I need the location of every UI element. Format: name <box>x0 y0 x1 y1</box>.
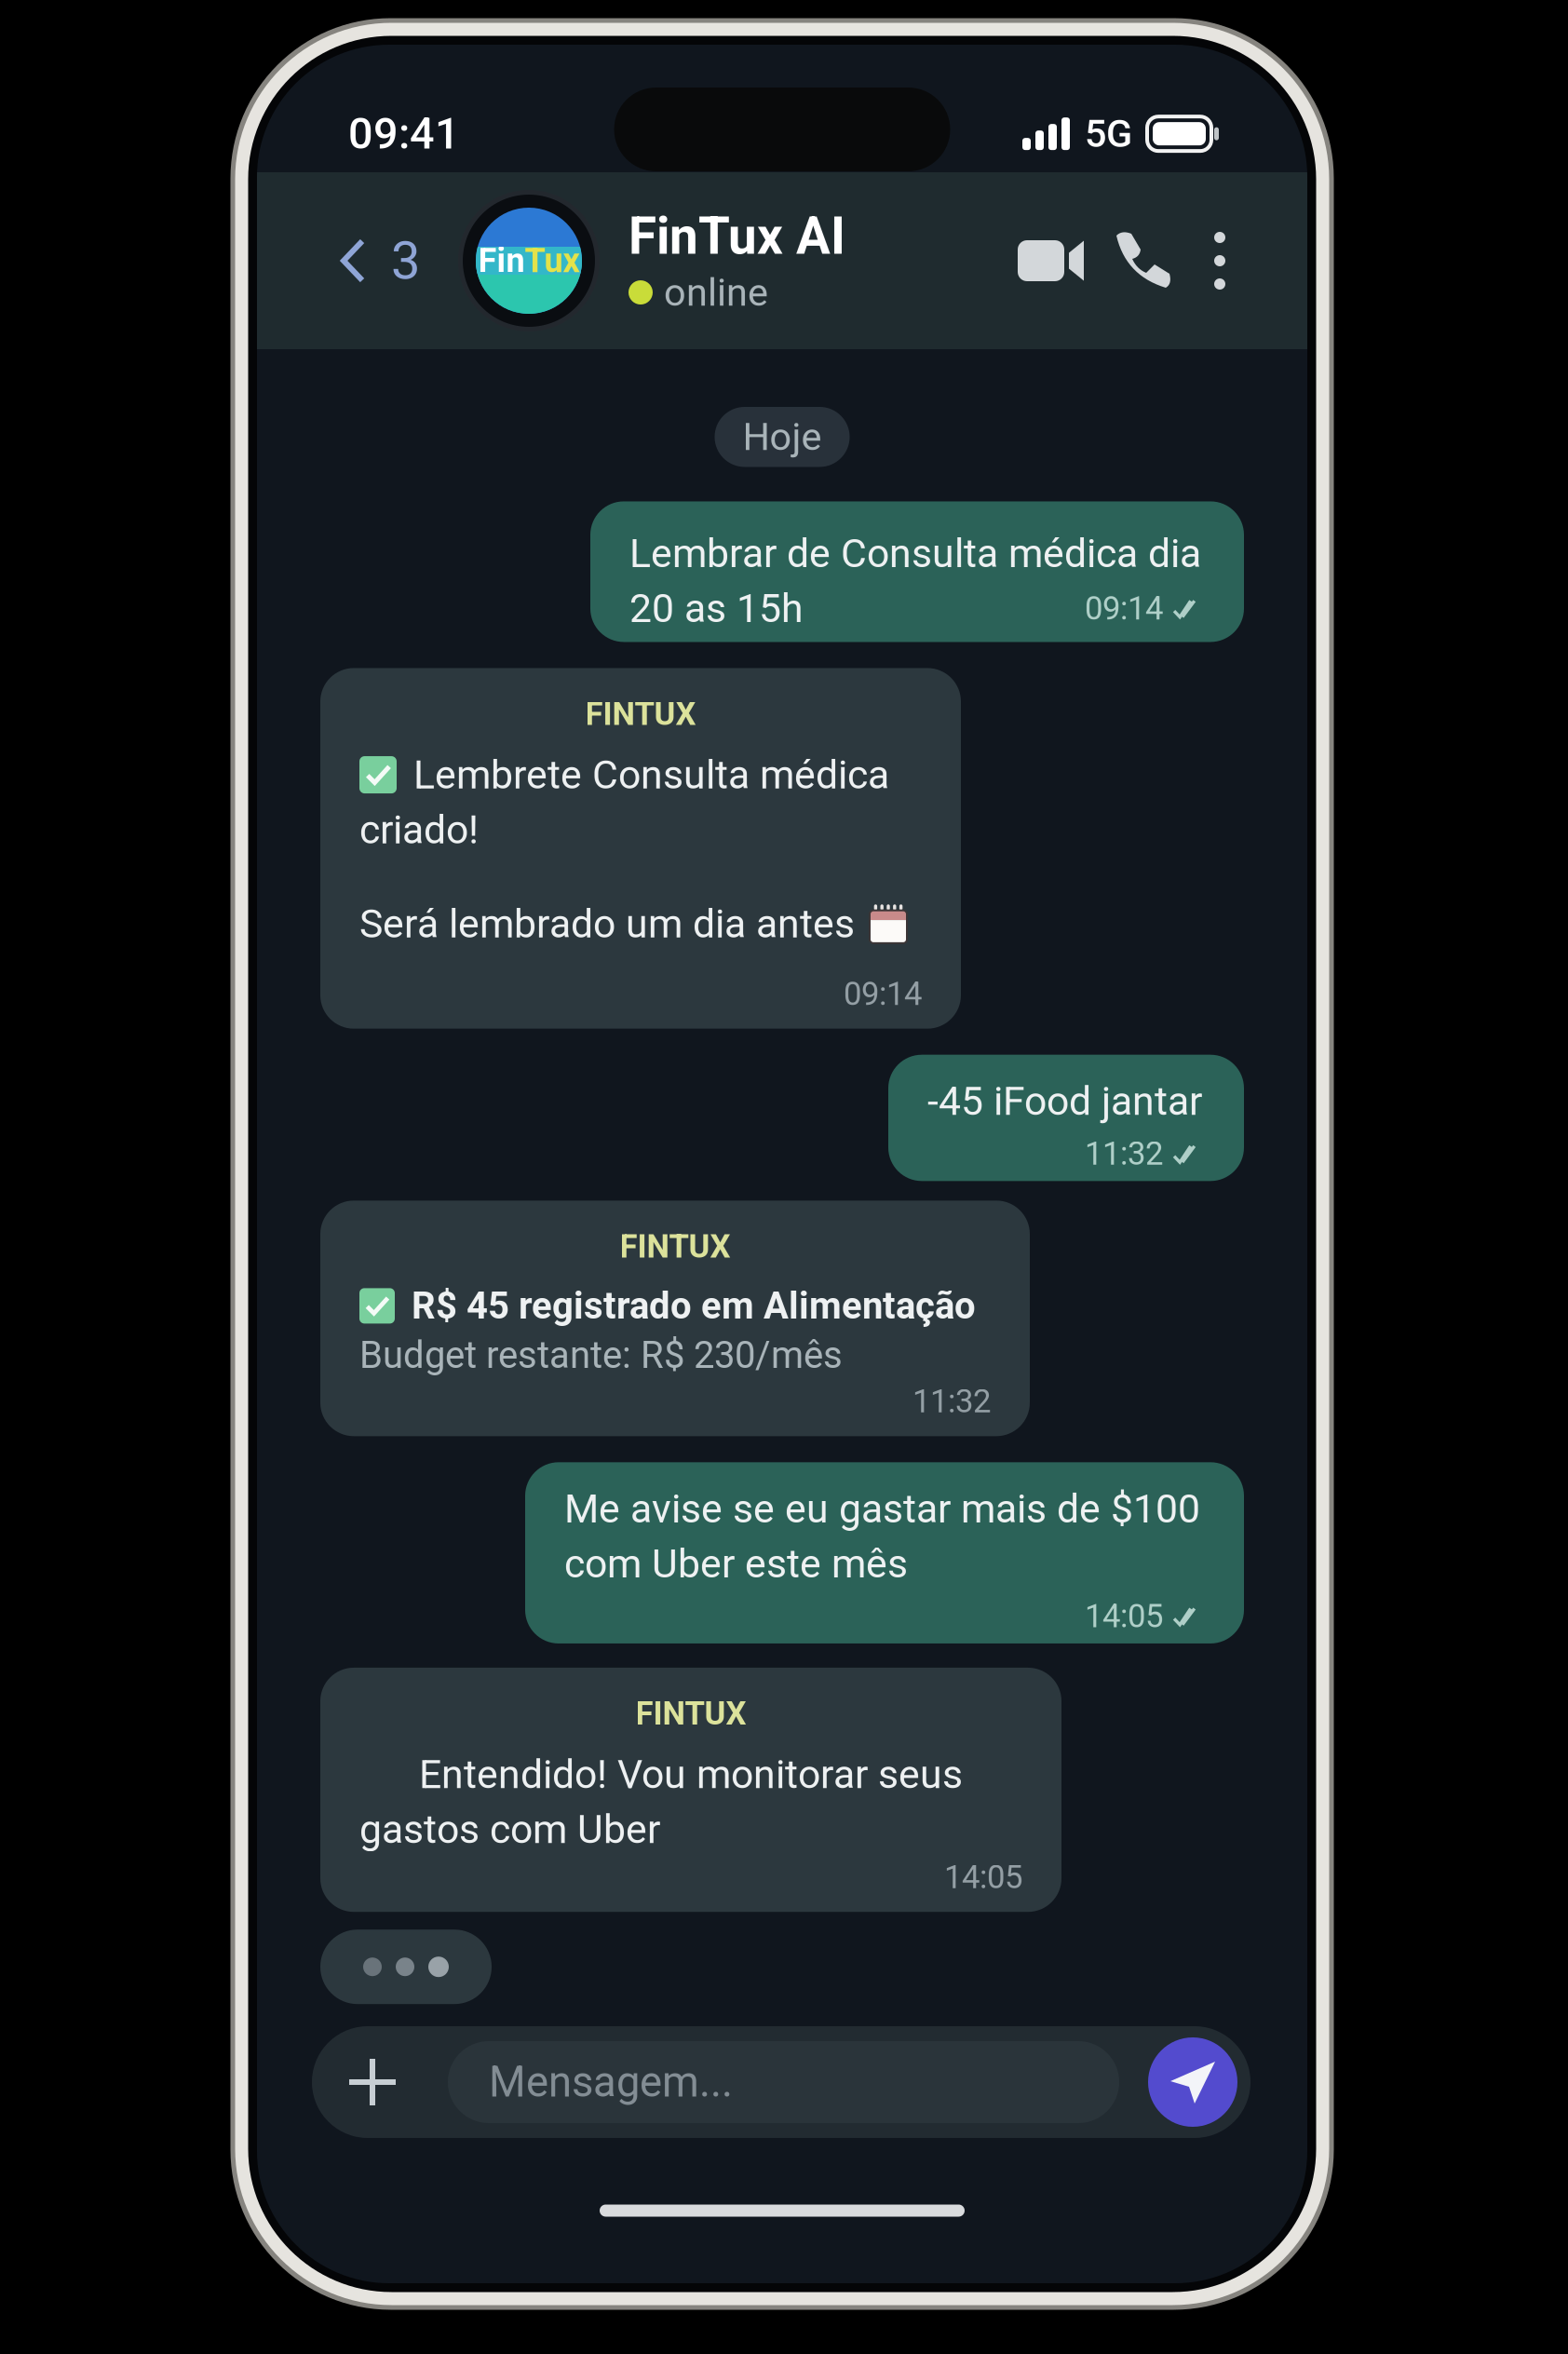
staticText: Lembrar de Consulta médica dia <box>629 530 1201 577</box>
staticText: FINTUX <box>620 1228 730 1265</box>
button[interactable]: Send <box>1148 2037 1237 2127</box>
staticText: Será lembrado um dia antes <box>359 901 855 947</box>
staticText: -45 iFood jantar <box>927 1078 1202 1125</box>
staticText: 3 <box>391 230 420 291</box>
staticText: 5G <box>1085 111 1132 156</box>
staticText: online <box>664 270 768 315</box>
staticText: 14:05 <box>944 1858 1022 1896</box>
staticText: FINTUX <box>635 1695 746 1733</box>
button[interactable]: Voice call <box>1094 213 1182 308</box>
staticText: FINTUX <box>585 695 696 733</box>
staticText: Hoje <box>743 414 822 459</box>
staticText: Me avise se eu gastar mais de $100 <box>564 1485 1200 1532</box>
staticText: Tux <box>525 241 580 280</box>
staticText: 09:41 <box>348 108 460 159</box>
button[interactable]: FinTux AI profile photo <box>458 190 600 331</box>
staticText: 09:14 <box>844 975 922 1013</box>
button[interactable]: Back <box>314 210 446 312</box>
staticText: Entendido! Vou monitorar seus <box>419 1751 963 1798</box>
staticText: criado! <box>359 806 479 853</box>
staticText: com Uber este mês <box>564 1540 908 1587</box>
staticText: Lembrete Consulta médica <box>413 752 889 798</box>
staticText: R$ 45 registrado em Alimentação <box>412 1284 976 1328</box>
button[interactable]: More options <box>1182 204 1264 318</box>
staticText: 11:32 <box>912 1383 991 1420</box>
staticText: Budget restante: R$ 230/mês <box>359 1333 843 1377</box>
staticText: 09:14 <box>1085 590 1163 627</box>
staticText: Fin <box>478 241 525 280</box>
button[interactable]: Video call <box>995 214 1094 308</box>
staticText: Mensagem... <box>489 2057 733 2107</box>
staticText: 11:32 <box>1085 1135 1163 1173</box>
staticText: gastos com Uber <box>359 1806 660 1853</box>
button[interactable]: Add attachment <box>312 2025 448 2139</box>
staticText: 14:05 <box>1085 1597 1163 1635</box>
staticText: FinTux AI <box>629 207 845 266</box>
staticText: 20 as 15h <box>629 585 804 632</box>
